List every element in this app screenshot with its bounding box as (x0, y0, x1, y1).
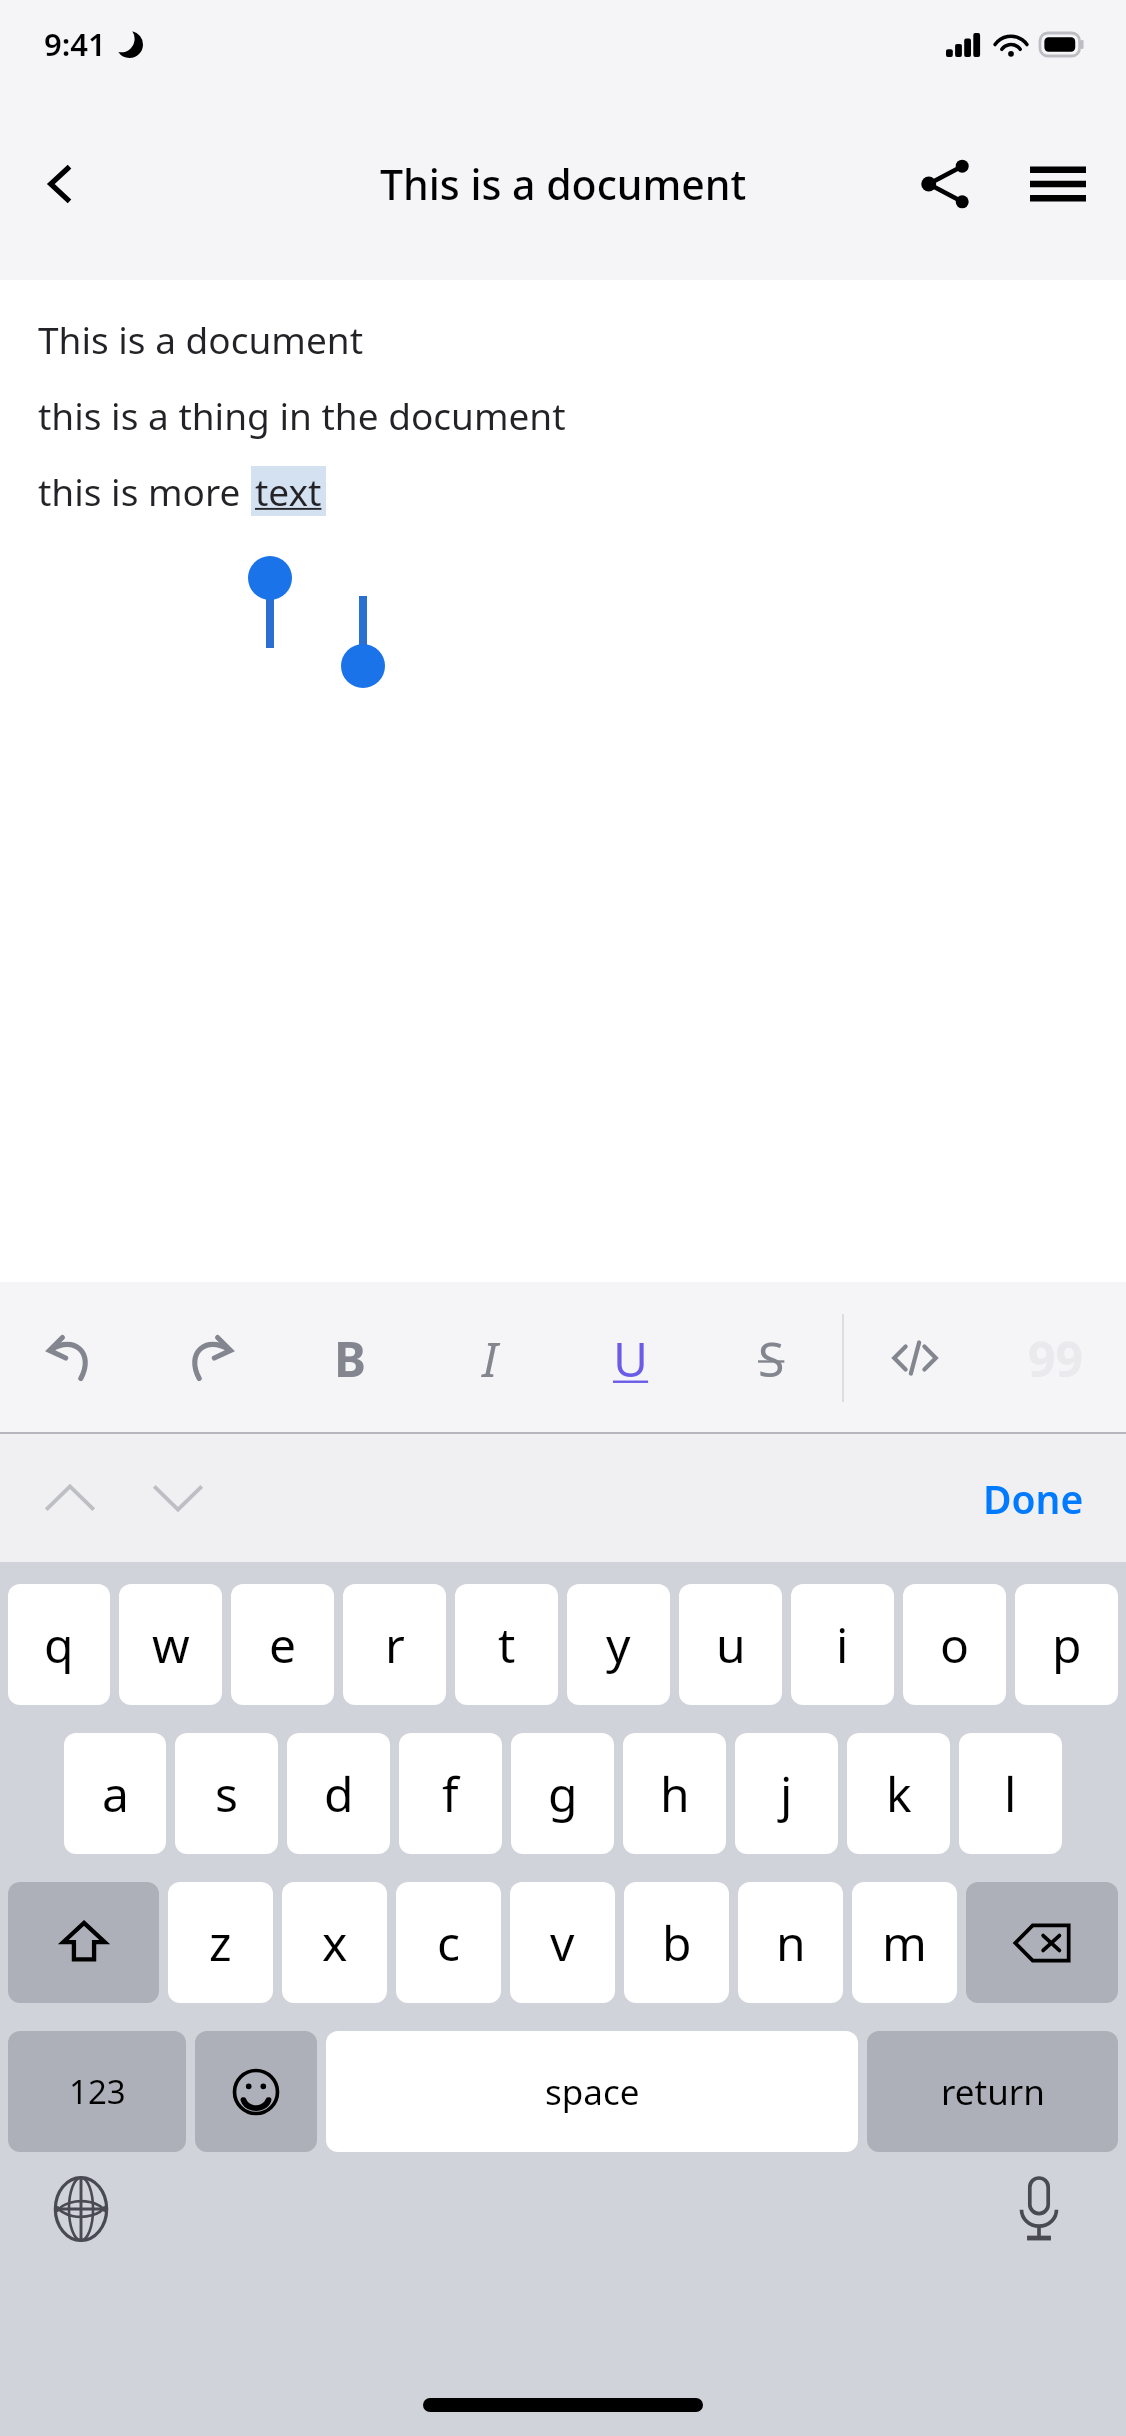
button[interactable]: d (287, 1733, 390, 1854)
staticText: space (545, 2068, 640, 2116)
staticText: B (334, 1326, 366, 1391)
staticText: g (548, 1761, 578, 1826)
button[interactable]: z (168, 1882, 273, 2003)
button[interactable]: Underline (560, 1282, 701, 1434)
button[interactable]: c (396, 1882, 501, 2003)
button[interactable]: e (231, 1584, 334, 1705)
staticText: n (776, 1910, 806, 1975)
staticText: text (255, 466, 322, 516)
staticText: t (498, 1612, 516, 1677)
button[interactable]: r (343, 1584, 446, 1705)
button[interactable]: y (567, 1584, 670, 1705)
button[interactable]: Strikethrough (701, 1282, 842, 1434)
button[interactable]: j (735, 1733, 838, 1854)
button[interactable]: Next field (134, 1454, 222, 1542)
button[interactable]: s (175, 1733, 278, 1854)
staticText: d (324, 1761, 354, 1826)
button[interactable]: q (8, 1584, 110, 1705)
staticText: 99 (1028, 1326, 1083, 1391)
button[interactable]: Shift (8, 1882, 159, 2003)
staticText: r (385, 1612, 405, 1677)
button[interactable]: f (399, 1733, 502, 1854)
staticText: I (482, 1326, 498, 1391)
staticText: q (44, 1612, 74, 1677)
staticText: b (662, 1910, 692, 1975)
staticText: 123 (69, 2069, 126, 2114)
button[interactable]: Italic (420, 1282, 560, 1434)
button[interactable]: Redo (140, 1282, 280, 1434)
button[interactable]: Share (900, 138, 992, 230)
button[interactable]: Back (20, 144, 100, 224)
button[interactable]: w (119, 1584, 222, 1705)
staticText: m (882, 1910, 927, 1975)
staticText: i (836, 1612, 849, 1677)
staticText: e (269, 1612, 297, 1677)
staticText: l (1004, 1761, 1017, 1826)
button[interactable]: Emoji (195, 2031, 317, 2152)
staticText: Done (983, 1472, 1084, 1525)
staticText: s (215, 1761, 238, 1826)
button[interactable]: p (1015, 1584, 1118, 1705)
button[interactable]: Code (844, 1282, 985, 1434)
button[interactable]: space (326, 2031, 858, 2152)
staticText: S (758, 1326, 785, 1391)
staticText: U (613, 1326, 649, 1391)
staticText: j (780, 1761, 793, 1826)
staticText: this is more (38, 466, 251, 516)
button[interactable]: a (64, 1733, 166, 1854)
button[interactable]: Quote (985, 1282, 1126, 1434)
button[interactable]: o (903, 1584, 1006, 1705)
staticText: o (940, 1612, 970, 1677)
staticText: f (442, 1761, 459, 1826)
staticText: y (606, 1612, 631, 1677)
button[interactable]: m (852, 1882, 957, 2003)
button[interactable]: n (738, 1882, 843, 2003)
staticText: 9:41 (44, 23, 106, 65)
staticText: This is a document (380, 156, 747, 212)
staticText: h (660, 1761, 690, 1826)
button[interactable]: Menu (1012, 138, 1104, 230)
button[interactable]: i (791, 1584, 894, 1705)
button[interactable]: u (679, 1584, 782, 1705)
staticText: u (716, 1612, 746, 1677)
button[interactable]: h (623, 1733, 726, 1854)
button[interactable]: return (867, 2031, 1118, 2152)
button[interactable]: k (847, 1733, 950, 1854)
staticText: w (152, 1612, 190, 1677)
button[interactable]: Backspace (966, 1882, 1118, 2003)
button[interactable]: x (282, 1882, 387, 2003)
button[interactable]: b (624, 1882, 729, 2003)
staticText: v (550, 1910, 575, 1975)
button[interactable]: g (511, 1733, 614, 1854)
button[interactable]: Undo (0, 1282, 140, 1434)
button[interactable]: Previous field (26, 1454, 114, 1542)
button[interactable]: t (455, 1584, 558, 1705)
button[interactable]: Change keyboard (34, 2162, 128, 2256)
staticText: k (886, 1761, 912, 1826)
button[interactable]: Done (969, 1460, 1098, 1537)
button[interactable]: l (959, 1733, 1062, 1854)
staticText: This is a document (38, 314, 364, 364)
staticText: z (209, 1910, 232, 1975)
staticText: x (322, 1910, 348, 1975)
staticText: p (1052, 1612, 1082, 1677)
button[interactable]: Dictate (992, 2162, 1086, 2256)
staticText: return (941, 2068, 1045, 2116)
button[interactable]: 123 (8, 2031, 186, 2152)
button[interactable]: Bold (280, 1282, 420, 1434)
staticText: a (102, 1761, 129, 1826)
button[interactable]: v (510, 1882, 615, 2003)
staticText: this is a thing in the document (38, 390, 566, 440)
staticText: c (437, 1910, 461, 1975)
